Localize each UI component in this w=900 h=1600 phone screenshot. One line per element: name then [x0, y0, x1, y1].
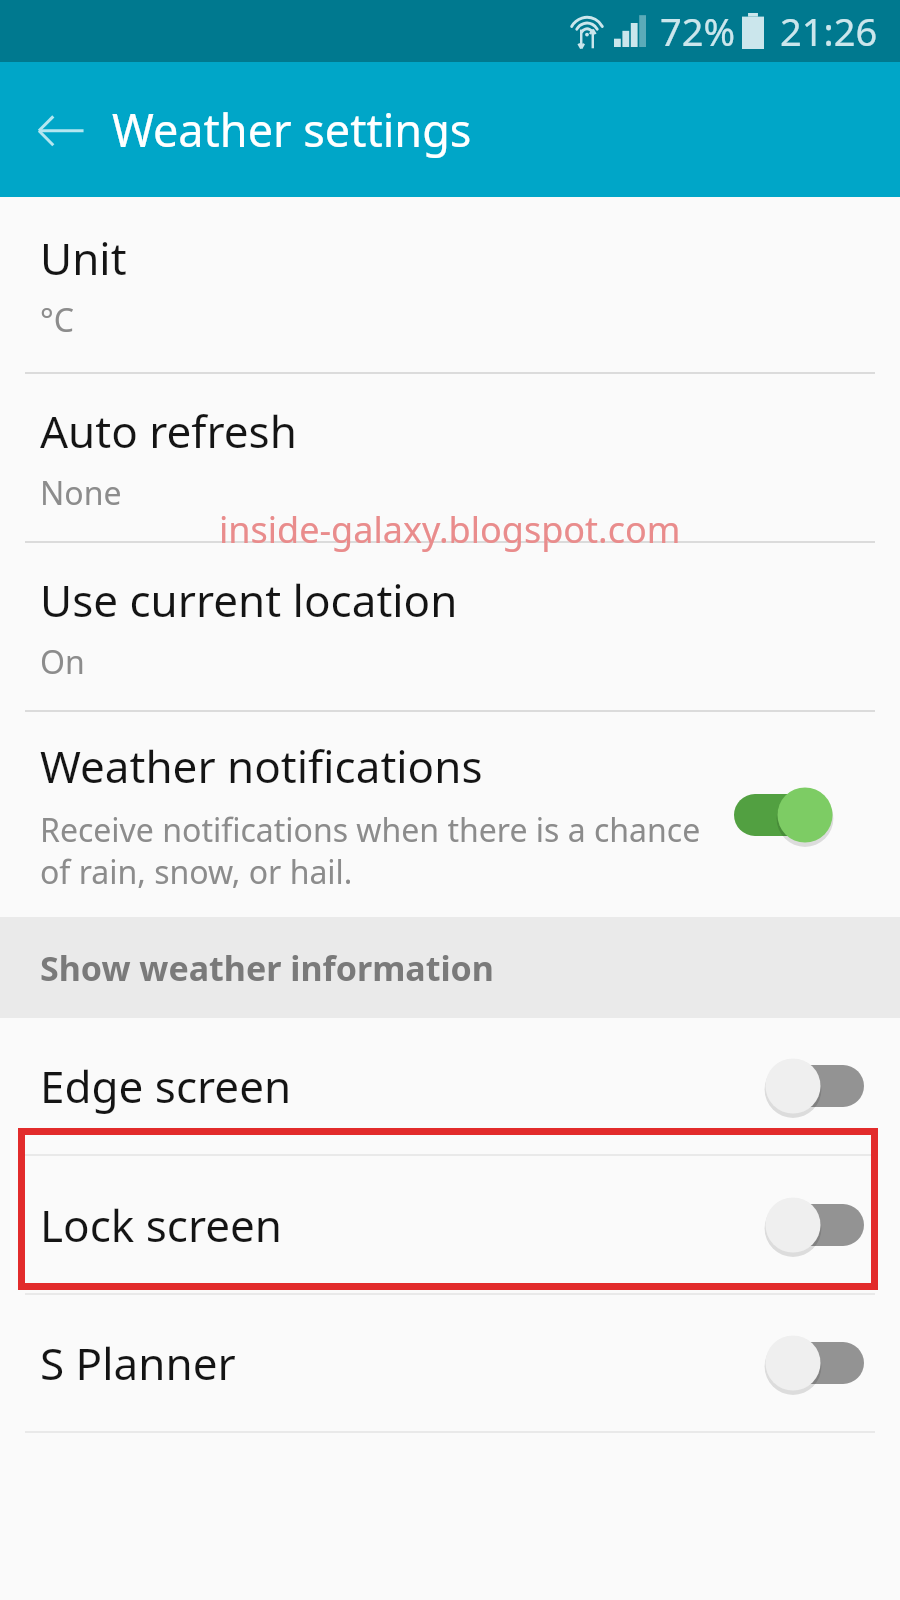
- staticText: S Planner: [40, 1333, 236, 1393]
- staticText: °C: [40, 298, 74, 342]
- button[interactable]: Weather notifications: [0, 712, 900, 917]
- staticText: 72%: [660, 5, 736, 57]
- staticText: Weather settings: [112, 99, 472, 160]
- other: Off: [764, 1196, 864, 1254]
- other: Off: [764, 1334, 864, 1392]
- other: Off: [764, 1057, 864, 1115]
- button[interactable]: Navigate up: [18, 87, 104, 173]
- staticText: Edge screen: [40, 1056, 292, 1116]
- staticText: On: [40, 640, 85, 684]
- staticText: Use current location: [40, 570, 458, 630]
- staticText: Unit: [40, 228, 127, 288]
- staticText: 21:26: [780, 5, 878, 57]
- other: On: [734, 786, 834, 844]
- button[interactable]: Use current location: [0, 543, 900, 710]
- staticText: Lock screen: [40, 1195, 283, 1255]
- staticText: Weather notifications: [40, 736, 483, 796]
- staticText: Show weather information: [40, 945, 494, 991]
- staticText: Receive notifications when there is a ch…: [40, 808, 730, 893]
- staticText: inside-galaxy.blogspot.com: [219, 505, 681, 554]
- button[interactable]: Unit: [0, 197, 900, 372]
- button[interactable]: S Planner: [0, 1295, 900, 1431]
- button[interactable]: Auto refresh: [0, 374, 900, 541]
- staticText: Auto refresh: [40, 401, 297, 461]
- button[interactable]: Edge screen: [0, 1018, 900, 1154]
- staticText: None: [40, 471, 122, 515]
- button[interactable]: Lock screen: [0, 1156, 900, 1293]
